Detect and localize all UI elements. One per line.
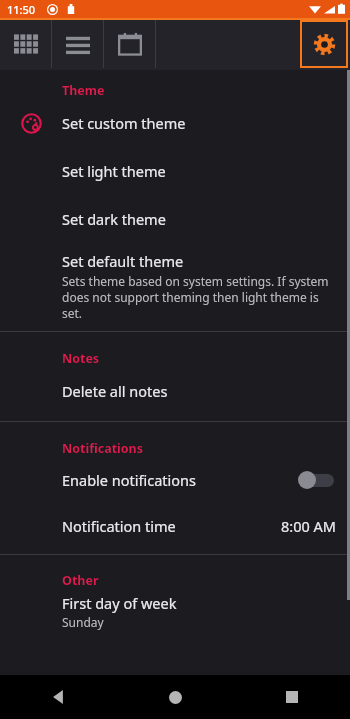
button[interactable]: Home [153,675,197,719]
button[interactable]: Delete all notes [0,367,350,415]
staticText: Set default theme [62,251,184,271]
staticText: Delete all notes [62,381,168,401]
button[interactable]: List view [52,20,103,68]
button[interactable]: Back [36,675,80,719]
staticText: Other [62,572,99,589]
staticText: Theme [62,82,105,99]
button[interactable]: First day of week [0,589,350,630]
button[interactable]: Enable notifications toggle [298,469,334,491]
button[interactable]: Set custom theme [0,99,350,147]
staticText: Notification time [62,516,281,536]
button[interactable]: Settings [300,20,348,68]
staticText: Set light theme [62,161,166,181]
staticText: Notifications [62,440,144,457]
button[interactable]: Recent apps [270,675,314,719]
button[interactable]: Calendar view [104,20,155,68]
staticText: Sunday [62,614,104,630]
button[interactable]: Set dark theme [0,195,350,243]
staticText: 11:50 [7,2,36,17]
staticText: Set custom theme [62,113,186,133]
button[interactable]: Grid view [0,20,51,68]
button[interactable]: Set default theme [0,243,350,331]
button[interactable]: Set light theme [0,147,350,195]
button[interactable]: Enable notifications [0,457,350,503]
button[interactable]: Notification time [0,503,350,549]
staticText: Notes [62,350,100,367]
staticText: Set dark theme [62,209,166,229]
staticText: Enable notifications [62,470,298,490]
staticText: First day of week [62,593,177,613]
staticText: 8:00 AM [281,516,336,536]
staticText: Sets theme based on system settings. If … [62,273,334,321]
